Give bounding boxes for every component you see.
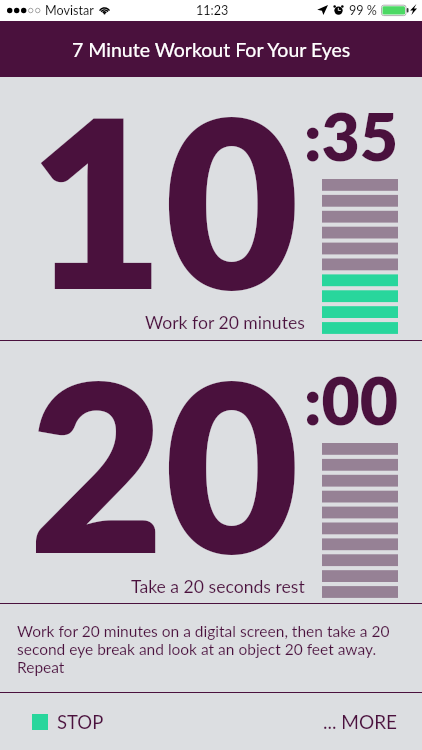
staticText: Movistar [45, 3, 94, 18]
staticText: Work for 20 minutes [145, 312, 305, 333]
staticText: 10 [29, 59, 300, 322]
staticText: 99 % [349, 3, 377, 18]
staticText: STOP [57, 711, 104, 733]
staticText: Work for 20 minutes on a digital screen,… [17, 622, 392, 676]
staticText: :35 [304, 96, 399, 175]
button[interactable]: ... MORE [307, 700, 422, 743]
staticText: 7 Minute Workout For Your Eyes [72, 38, 351, 61]
staticText: Take a 20 seconds rest [131, 576, 305, 597]
staticText: 20 [29, 323, 300, 585]
button[interactable]: STOP [0, 701, 120, 743]
staticText: :00 [304, 360, 399, 439]
staticText: 11:23 [196, 3, 229, 18]
staticText: ... MORE [323, 710, 398, 733]
